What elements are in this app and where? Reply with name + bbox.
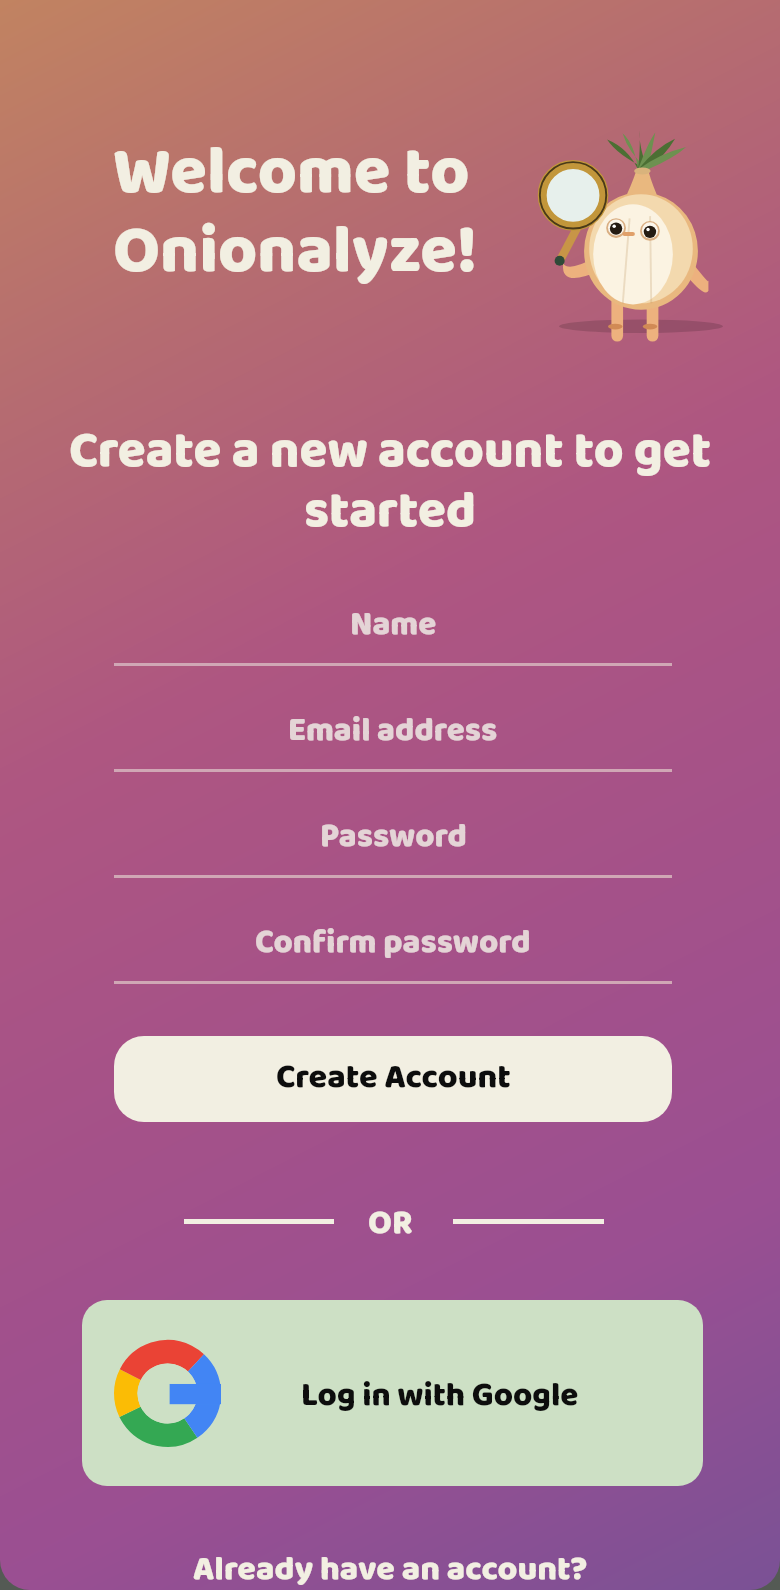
button[interactable]: Google (82, 1300, 703, 1486)
button[interactable]: Create Account (114, 1036, 672, 1122)
staticText: Welcome to Onionalyze! (113, 120, 478, 306)
staticText: Log in with Google (301, 1369, 579, 1422)
staticText: Create Account (276, 1050, 511, 1104)
button[interactable]: Name (114, 589, 672, 666)
other: Google (114, 1340, 221, 1447)
staticText: Already have an account? (193, 1542, 588, 1590)
button[interactable]: Email address (114, 695, 672, 772)
staticText: OR (368, 1196, 413, 1250)
staticText: Email address (288, 704, 498, 757)
staticText: Name (350, 598, 437, 651)
staticText: Create a new account to get started (52, 411, 728, 553)
staticText: Confirm password (255, 916, 531, 969)
button[interactable]: Confirm password (114, 907, 672, 984)
staticText: Password (320, 810, 467, 863)
button[interactable]: Password (114, 801, 672, 878)
button[interactable]: Already have an account? (0, 1542, 780, 1590)
other: Onion mascot (539, 129, 711, 335)
